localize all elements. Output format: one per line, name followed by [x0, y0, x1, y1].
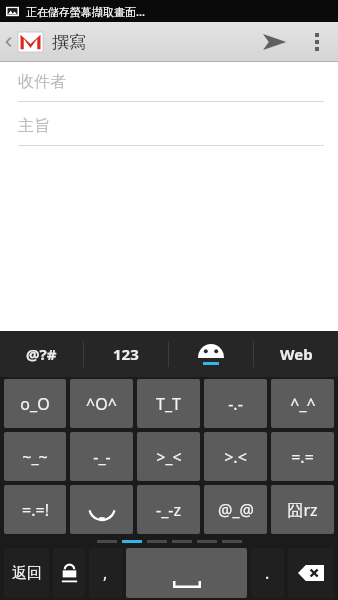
button[interactable]: 返回 [4, 548, 49, 598]
button[interactable]: o_O [4, 379, 66, 428]
staticText: ^O^ [86, 393, 117, 415]
button[interactable]: ~_~ [4, 432, 66, 481]
button[interactable]: Emoticons [169, 331, 253, 377]
button[interactable]: 123 [84, 331, 168, 377]
staticText: 撰寫 [52, 32, 86, 53]
staticText: =.=! [22, 499, 49, 521]
button[interactable]: Web [254, 331, 338, 377]
staticText: . [265, 562, 270, 584]
button[interactable]: >_< [137, 432, 200, 481]
button[interactable]: =.= [271, 432, 334, 481]
staticText: ^_^ [290, 393, 316, 415]
staticText: 囧rz [287, 499, 318, 521]
button[interactable]: 收件者 [0, 62, 338, 106]
button[interactable]: 撰寫 [0, 22, 92, 62]
staticText: 主旨 [18, 116, 50, 136]
staticText: o_O [20, 393, 50, 415]
staticText: -_- [93, 446, 111, 468]
button[interactable]: -.- [204, 379, 267, 428]
staticText: >.< [224, 446, 247, 468]
button[interactable]: 主旨 [0, 106, 338, 150]
button[interactable]: >.< [204, 432, 267, 481]
staticText: 123 [113, 344, 139, 364]
button[interactable]: ^_^ [271, 379, 334, 428]
staticText: ~_~ [22, 446, 48, 468]
button[interactable]: More options [302, 22, 332, 62]
button[interactable]: Send [246, 22, 302, 62]
button[interactable]: @?# [0, 331, 83, 377]
staticText: Web [280, 344, 313, 364]
button[interactable]: Smile emoticon [70, 485, 133, 534]
button[interactable]: T_T [137, 379, 200, 428]
staticText: @_@ [218, 499, 254, 521]
button[interactable]: -_-z [137, 485, 200, 534]
button[interactable]: =.=! [4, 485, 66, 534]
button[interactable]: 囧rz [271, 485, 334, 534]
staticText: T_T [156, 393, 181, 415]
button[interactable]: Shift [53, 548, 85, 598]
staticText: >_< [156, 446, 182, 468]
staticText: 收件者 [18, 72, 66, 92]
staticText: -_-z [156, 499, 181, 521]
button[interactable]: Backspace [288, 548, 334, 598]
button[interactable]: -_- [70, 432, 133, 481]
button[interactable]: , [89, 548, 122, 598]
staticText: @?# [26, 344, 57, 364]
staticText: -.- [228, 393, 243, 415]
button[interactable]: ^O^ [70, 379, 133, 428]
button[interactable]: . [251, 548, 284, 598]
staticText: , [103, 562, 108, 584]
staticText: 正在儲存螢幕擷取畫面... [26, 4, 145, 19]
button[interactable]: @_@ [204, 485, 267, 534]
staticText: =.= [291, 446, 314, 468]
staticText: 返回 [12, 564, 42, 583]
button[interactable]: Space [126, 548, 247, 598]
